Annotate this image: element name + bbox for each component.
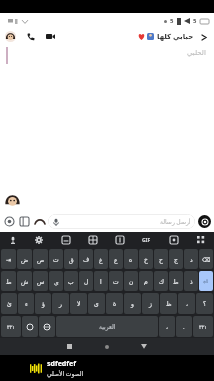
button[interactable]: ى (88, 293, 105, 314)
button[interactable]: Camera (3, 215, 16, 228)
button[interactable]: Home (88, 338, 125, 355)
button[interactable]: ج (169, 249, 183, 269)
button[interactable]: ٣٢١ (1, 316, 21, 337)
button[interactable]: غ (94, 249, 108, 269)
staticText: 5 (193, 17, 197, 25)
button[interactable]: Profile photo (5, 31, 16, 42)
staticText: لا (77, 300, 81, 307)
button[interactable]: grid (79, 232, 106, 248)
staticText: ؤ (42, 300, 45, 307)
button[interactable]: ٣٢١ (193, 316, 213, 337)
staticText: ط (173, 278, 179, 285)
staticText: GIF (142, 237, 151, 244)
staticText: حبابي كلها (157, 32, 194, 42)
button[interactable]: العربية (56, 316, 158, 337)
button[interactable]: Gallery (18, 215, 31, 228)
button[interactable]: ث (49, 249, 63, 269)
button[interactable]: clip (106, 232, 133, 248)
staticText: . (183, 323, 185, 331)
button[interactable]: gif (133, 232, 160, 248)
button[interactable]: د (184, 249, 198, 269)
button[interactable]: Stickers (33, 215, 46, 228)
staticText: ، (186, 300, 188, 307)
staticText: ض (21, 256, 29, 263)
staticText: ك (159, 278, 164, 285)
button[interactable]: Back (125, 338, 162, 355)
staticText: ص (37, 256, 45, 263)
staticText: ن (129, 278, 134, 285)
button[interactable]: ر (52, 293, 69, 314)
button[interactable]: أرسل رسالة (48, 214, 195, 229)
button[interactable]: ح (154, 249, 168, 269)
button[interactable]: sticker (52, 232, 79, 248)
button[interactable]: م (139, 271, 153, 291)
button[interactable]: . (176, 316, 192, 337)
button[interactable]: ئ (1, 293, 17, 314)
button[interactable]: ع (109, 249, 123, 269)
button[interactable]: Send (198, 215, 211, 228)
button[interactable]: ذ (184, 271, 198, 291)
button[interactable]: ظ (160, 293, 177, 314)
button[interactable]: س (33, 271, 48, 291)
button[interactable]: ش (17, 271, 32, 291)
button[interactable]: apps (187, 232, 214, 248)
staticText: ت (113, 278, 119, 285)
staticText: ي (54, 278, 59, 285)
button[interactable]: emoji (160, 232, 187, 248)
button[interactable]: ط (1, 271, 16, 291)
button[interactable]: ا (94, 271, 108, 291)
staticText: ج (174, 256, 178, 263)
button[interactable]: ة (106, 293, 123, 314)
button[interactable]: ت (109, 271, 123, 291)
button[interactable]: ⏎ (199, 271, 213, 291)
staticText: ر (59, 300, 62, 307)
button[interactable]: ه (124, 249, 138, 269)
button[interactable]: ؟ (196, 293, 213, 314)
staticText: ث (53, 256, 59, 263)
staticText: أرسل رسالة (160, 218, 191, 226)
staticText: الصوت الأصلي (47, 370, 84, 378)
button[interactable]: Emoji (22, 316, 38, 337)
button[interactable]: ⇥ (1, 249, 16, 269)
staticText: س (37, 278, 45, 285)
staticText: ش (21, 278, 29, 285)
staticText: ؟ (203, 300, 207, 307)
button[interactable]: ب (64, 271, 78, 291)
button[interactable]: خ (139, 249, 153, 269)
button[interactable]: Change language (39, 316, 55, 337)
button[interactable]: ن (124, 271, 138, 291)
staticText: ق (69, 256, 74, 263)
button[interactable]: ص (33, 249, 48, 269)
button[interactable]: Voice call (24, 30, 37, 43)
staticText: ل (84, 278, 89, 285)
button[interactable]: Video call (44, 30, 57, 43)
staticText: ب (68, 278, 74, 285)
staticText: ⌫ (202, 256, 211, 263)
button[interactable]: gear (26, 232, 52, 248)
button[interactable]: Back (198, 31, 210, 43)
button[interactable]: ؤ (35, 293, 51, 314)
button[interactable]: ، (159, 316, 175, 337)
button[interactable]: ك (154, 271, 168, 291)
staticText: ز (149, 300, 152, 307)
button[interactable]: ط (169, 271, 183, 291)
button[interactable]: mic (0, 232, 26, 248)
button[interactable]: ق (64, 249, 78, 269)
staticText: ٣٢١ (199, 324, 208, 330)
button[interactable]: ض (17, 249, 32, 269)
button[interactable]: ل (79, 271, 93, 291)
button[interactable]: ⌫ (199, 249, 213, 269)
staticText: ذ (190, 278, 193, 285)
button[interactable]: ز (142, 293, 159, 314)
button[interactable]: ء (18, 293, 34, 314)
staticText: ا (100, 278, 102, 285)
button[interactable]: ي (49, 271, 63, 291)
staticText: ف (83, 256, 90, 263)
button[interactable]: ف (79, 249, 93, 269)
staticText: العربية (99, 323, 116, 330)
button[interactable]: لا (70, 293, 87, 314)
button[interactable]: و (124, 293, 141, 314)
staticText: 5 (170, 17, 174, 25)
button[interactable]: ، (178, 293, 195, 314)
button[interactable]: Recents (51, 338, 88, 355)
